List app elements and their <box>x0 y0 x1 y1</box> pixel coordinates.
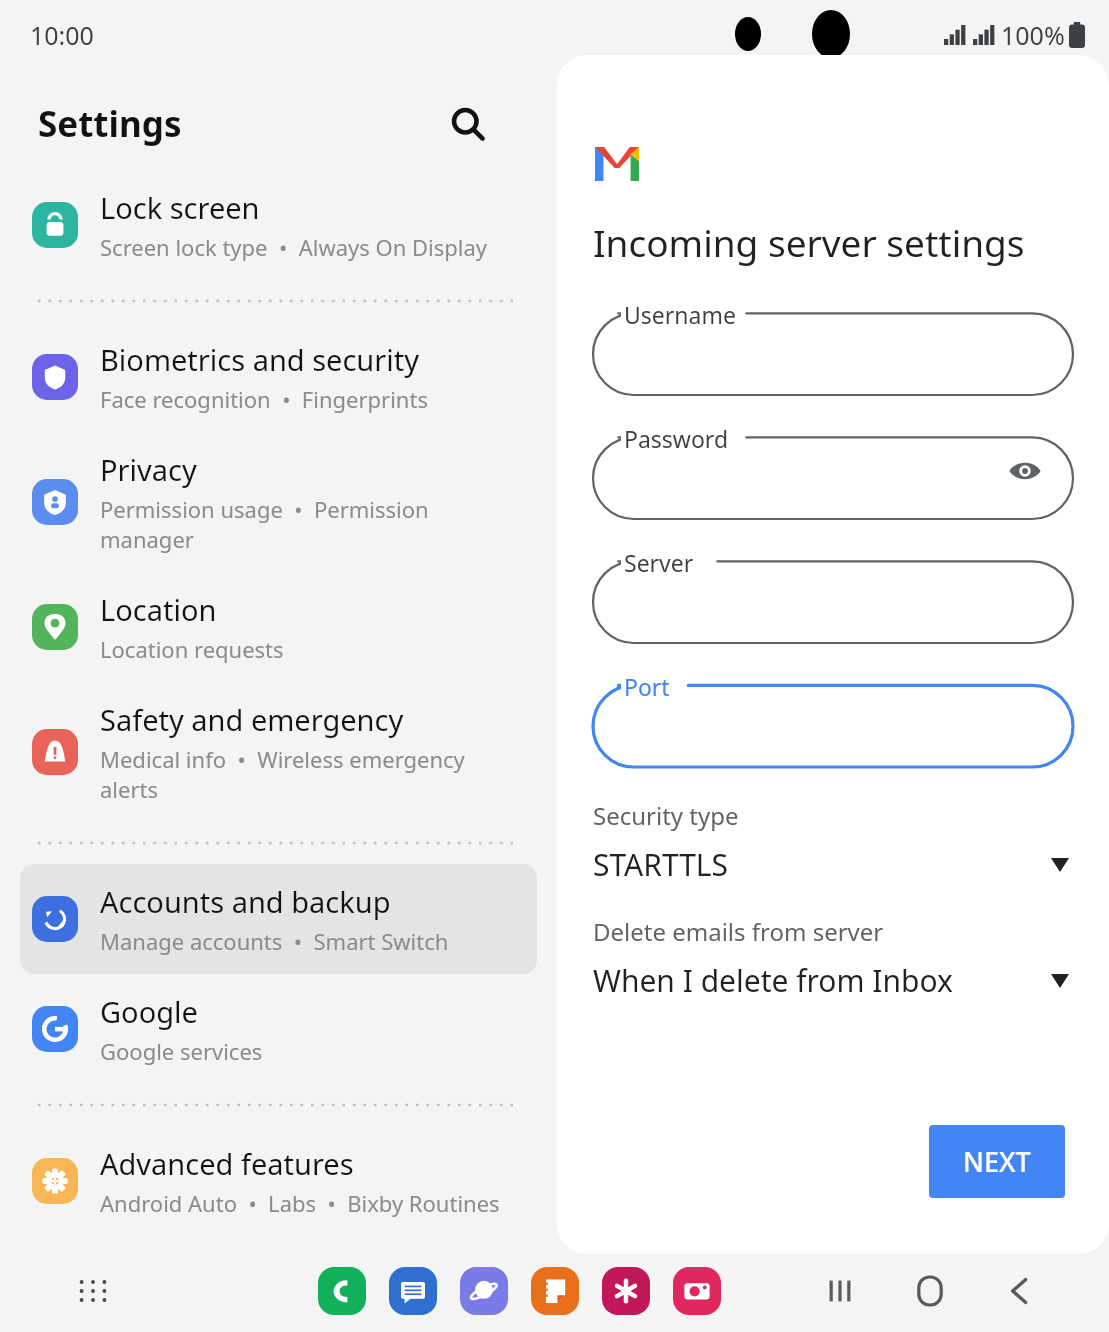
button[interactable]: Biometrics and security <box>20 322 537 432</box>
button[interactable]: All apps <box>68 1266 118 1316</box>
button[interactable]: Google <box>20 974 537 1084</box>
staticText: Advanced features <box>100 1144 354 1183</box>
staticText: Google services <box>100 1036 263 1066</box>
staticText: Location <box>100 590 217 629</box>
button[interactable]: Server <box>593 547 1073 643</box>
button[interactable]: Delete emails from server <box>557 915 1109 1001</box>
staticText: When I delete from Inbox <box>593 960 953 1001</box>
button[interactable]: Messages <box>389 1267 437 1315</box>
staticText: Username <box>624 299 736 330</box>
staticText: Port <box>624 671 670 702</box>
button[interactable]: Security type <box>557 799 1109 885</box>
button[interactable]: Privacy <box>20 432 537 572</box>
staticText: Server <box>624 547 694 578</box>
staticText: Accounts and backup <box>100 882 391 921</box>
button[interactable]: Advanced features <box>20 1126 537 1236</box>
button[interactable]: Galaxy Store <box>602 1267 650 1315</box>
button[interactable]: Back <box>991 1262 1049 1320</box>
button[interactable]: Accounts and backup <box>20 864 537 974</box>
staticText: Face recognition • Fingerprints <box>100 384 428 414</box>
staticText: Incoming server settings <box>593 217 1025 267</box>
staticText: STARTTLS <box>593 844 729 885</box>
staticText: Delete emails from server <box>593 915 884 948</box>
button[interactable]: NEXT <box>929 1125 1065 1198</box>
button[interactable]: Port <box>593 671 1073 767</box>
staticText: Lock screen <box>100 188 260 227</box>
staticText: Permission usage • Permission manager <box>100 494 525 554</box>
staticText: NEXT <box>963 1143 1031 1180</box>
button[interactable]: Show password <box>1001 447 1049 495</box>
button[interactable]: Notes <box>531 1267 579 1315</box>
staticText: Medical info • Wireless emergency alerts <box>100 744 525 804</box>
button[interactable]: Username <box>593 299 1073 395</box>
button[interactable]: Location <box>20 572 537 682</box>
button[interactable]: Search <box>441 97 495 151</box>
button[interactable]: Recents <box>811 1262 869 1320</box>
staticText: Screen lock type • Always On Display <box>100 232 488 262</box>
button[interactable]: Safety and emergency <box>20 682 537 822</box>
button[interactable]: Camera <box>673 1267 721 1315</box>
staticText: 10:00 <box>30 18 94 52</box>
staticText: Biometrics and security <box>100 340 420 379</box>
staticText: 100% <box>1001 18 1065 52</box>
staticText: Google <box>100 992 198 1031</box>
button[interactable]: Internet <box>460 1267 508 1315</box>
staticText: Manage accounts • Smart Switch <box>100 926 449 956</box>
staticText: Safety and emergency <box>100 700 404 739</box>
staticText: Location requests <box>100 634 284 664</box>
button[interactable]: Phone <box>318 1267 366 1315</box>
staticText: Security type <box>593 799 739 832</box>
staticText: Privacy <box>100 450 197 489</box>
staticText: Settings <box>38 100 182 148</box>
button[interactable]: Home <box>901 1262 959 1320</box>
staticText: Android Auto • Labs • Bixby Routines <box>100 1188 500 1218</box>
button[interactable]: Lock screen <box>20 170 537 280</box>
staticText: Password <box>624 423 729 454</box>
button[interactable]: Password <box>593 423 1073 519</box>
